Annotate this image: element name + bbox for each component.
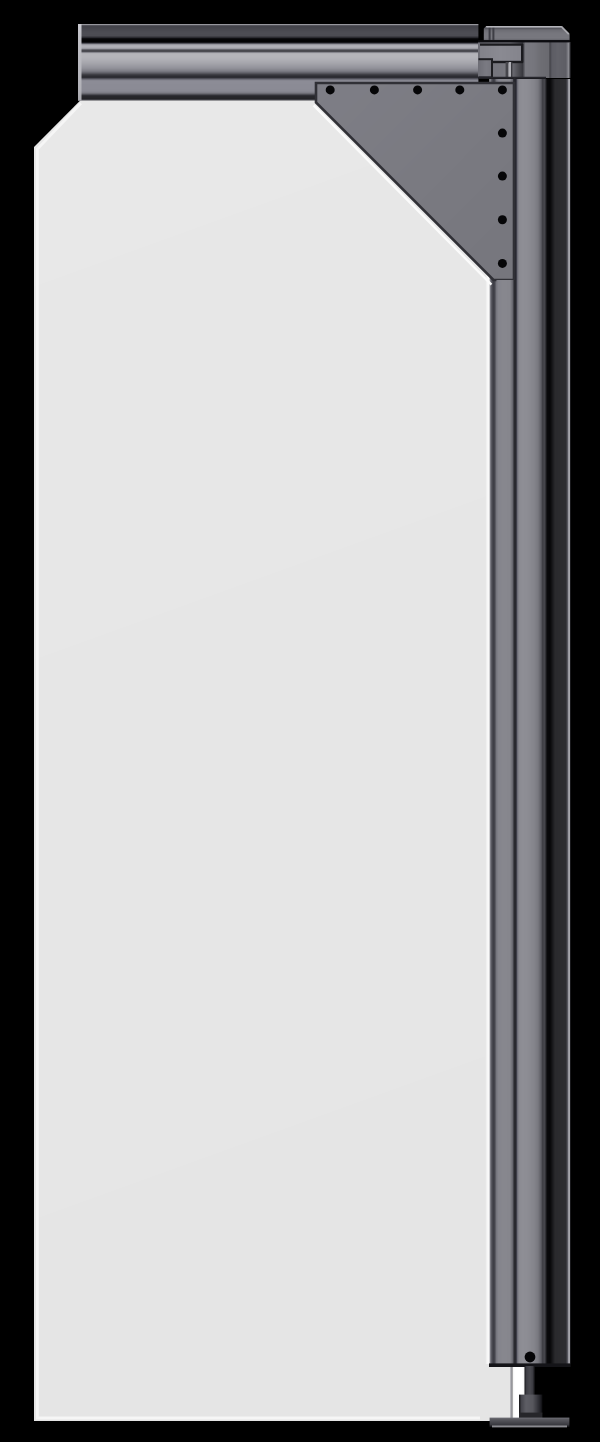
- button[interactable]: Levelling foot: [489, 1364, 571, 1430]
- button[interactable]: Panel: [34, 100, 511, 1420]
- button[interactable]: Post top cap: [483, 25, 571, 85]
- button[interactable]: Top rail: [78, 24, 481, 101]
- button[interactable]: Corner gusset plate: [316, 83, 514, 280]
- button[interactable]: Vertical post: [489, 79, 571, 1364]
